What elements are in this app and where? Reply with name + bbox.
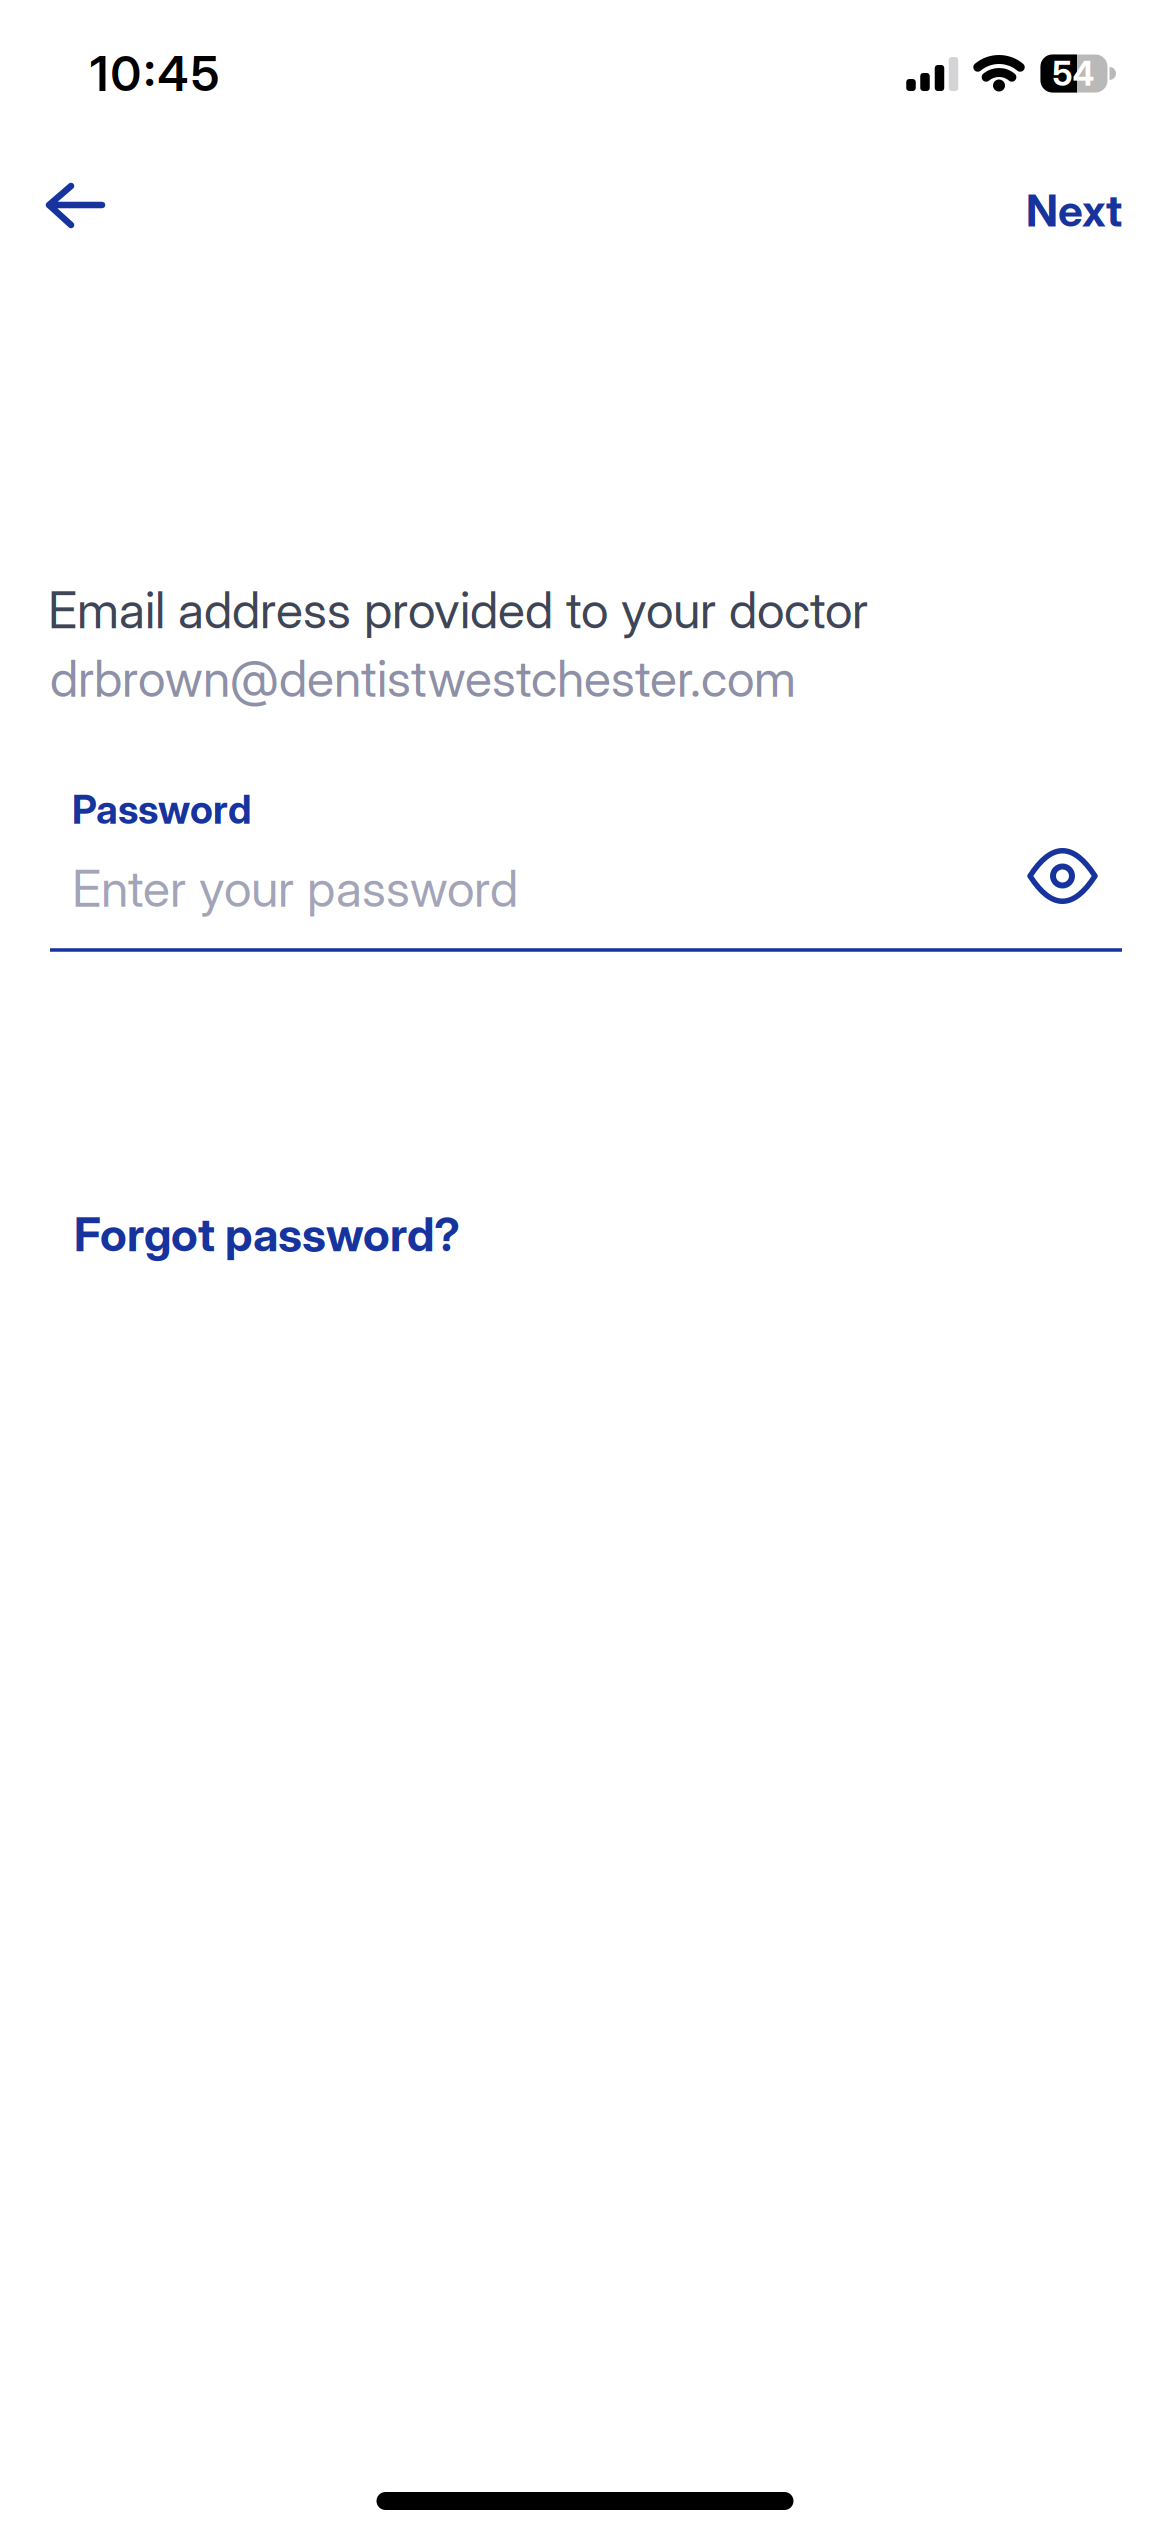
staticText: Password: [72, 786, 252, 833]
button[interactable]: Next: [962, 184, 1122, 237]
staticText: Enter your password: [72, 858, 518, 919]
button[interactable]: Forgot password?: [74, 1207, 774, 1262]
staticText: drbrown@dentistwestchester.com: [50, 648, 796, 709]
staticText: Next: [1026, 184, 1122, 237]
staticText: 10:45: [90, 44, 219, 103]
button[interactable]: [25, 160, 125, 250]
staticText: Email address provided to your doctor: [48, 580, 868, 640]
staticText: Forgot password?: [74, 1207, 460, 1262]
staticText: 54: [1052, 53, 1094, 94]
button[interactable]: [1012, 831, 1112, 921]
